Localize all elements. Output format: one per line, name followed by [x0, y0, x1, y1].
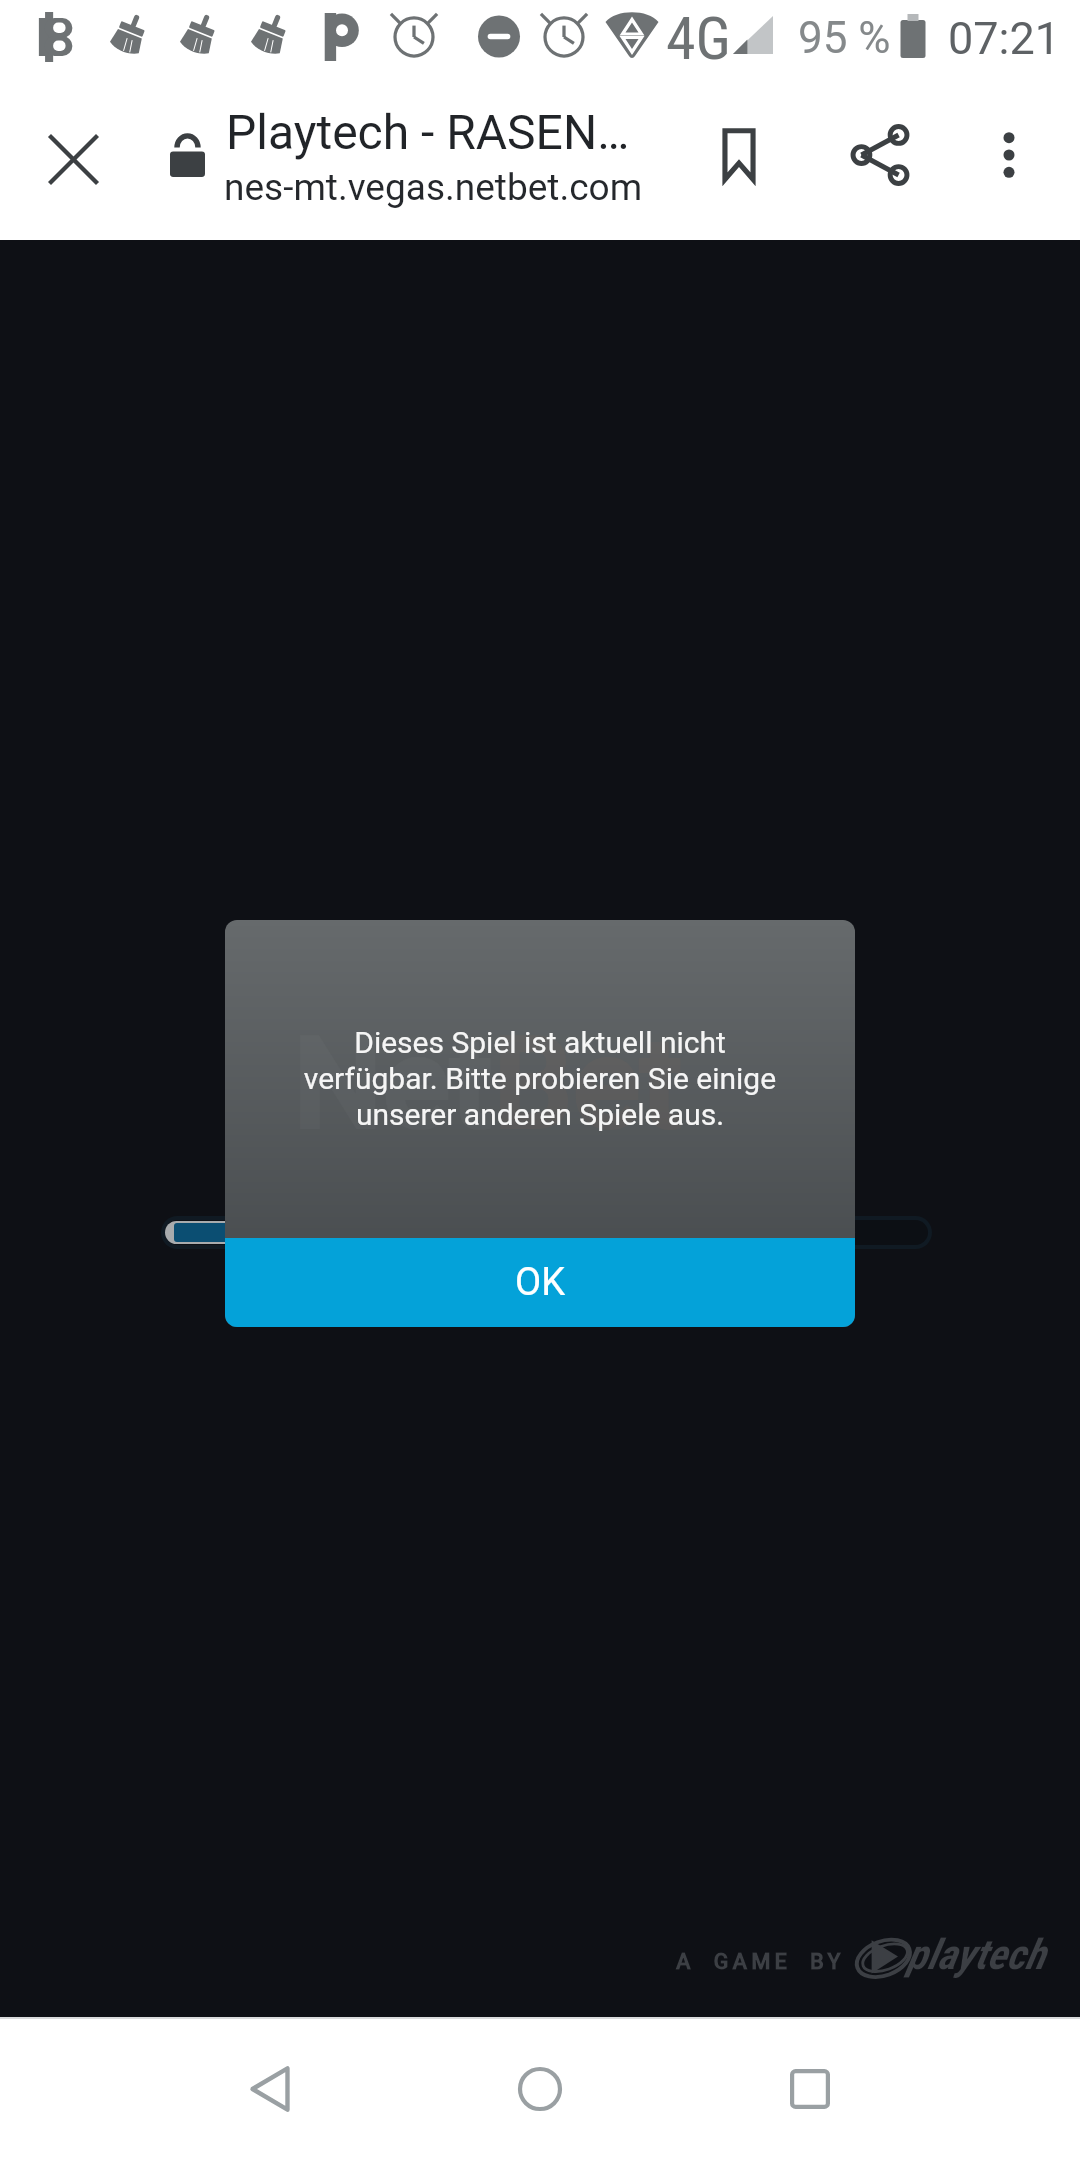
- button[interactable]: Recent apps: [740, 2019, 880, 2159]
- staticText: 4G: [666, 3, 732, 73]
- button[interactable]: Close: [11, 95, 131, 215]
- staticText: Dieses Spiel ist aktuell nicht verfügbar…: [301, 1025, 779, 1132]
- staticText: A GAME BY: [676, 1949, 845, 1975]
- button[interactable]: Back: [200, 2019, 340, 2159]
- staticText: Net: [293, 1010, 493, 1158]
- button[interactable]: OK: [225, 1238, 855, 1327]
- button[interactable]: Home: [470, 2019, 610, 2159]
- button[interactable]: Share: [820, 95, 940, 215]
- staticText: 07:21: [948, 12, 1061, 65]
- staticText: 95 %: [798, 12, 891, 64]
- staticText: Bet: [493, 1010, 683, 1158]
- staticText: nes-mt.vegas.netbet.com: [224, 166, 643, 209]
- staticText: OK: [515, 1260, 565, 1305]
- staticText: playtech: [907, 1930, 1046, 1979]
- button[interactable]: Bookmark: [679, 95, 799, 215]
- button[interactable]: More options: [949, 95, 1069, 215]
- staticText: Playtech - RASEN…: [226, 104, 630, 160]
